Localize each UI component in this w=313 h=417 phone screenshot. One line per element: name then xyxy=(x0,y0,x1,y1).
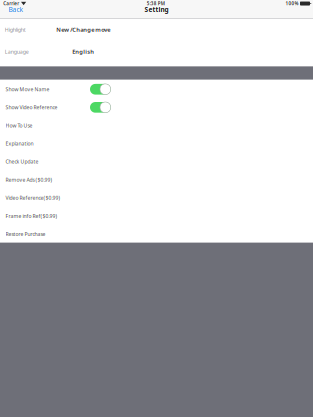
button[interactable]: Back xyxy=(0,6,44,13)
staticText: Explanation xyxy=(5,140,33,147)
button[interactable]: Highlight xyxy=(0,19,313,41)
button[interactable]: Remove Ads ($0.99) xyxy=(0,171,313,189)
staticText: Check Update xyxy=(5,158,38,165)
button[interactable]: Show Move Name xyxy=(0,80,313,98)
staticText: Frame info Ref($0.99) xyxy=(5,212,57,219)
button[interactable]: Language xyxy=(0,41,313,63)
button[interactable]: Check Update xyxy=(0,153,313,171)
staticText: Restore Purchase xyxy=(5,231,45,237)
staticText: Language xyxy=(5,48,29,55)
staticText: New /Change move xyxy=(56,26,110,33)
staticText: 100% xyxy=(285,0,298,7)
button[interactable]: Show Video Reference xyxy=(0,98,313,116)
staticText: Carrier xyxy=(3,0,19,7)
button[interactable]: How To Use xyxy=(0,116,313,134)
staticText: Show Video Reference xyxy=(5,104,57,111)
staticText: Back xyxy=(8,5,23,14)
button[interactable]: Video Reference($0.99) xyxy=(0,189,313,207)
staticText: Setting xyxy=(144,5,168,14)
button[interactable]: Frame info Ref($0.99) xyxy=(0,207,313,225)
staticText: Video Reference($0.99) xyxy=(5,194,60,201)
staticText: English xyxy=(72,48,94,55)
button[interactable]: Explanation xyxy=(0,134,313,153)
staticText: 5:38 PM xyxy=(147,0,165,7)
staticText: Remove Ads ($0.99) xyxy=(5,176,52,183)
button[interactable]: Restore Purchase xyxy=(0,225,313,243)
staticText: How To Use xyxy=(5,122,32,129)
staticText: Highlight xyxy=(5,26,26,33)
staticText: Show Move Name xyxy=(5,86,49,93)
